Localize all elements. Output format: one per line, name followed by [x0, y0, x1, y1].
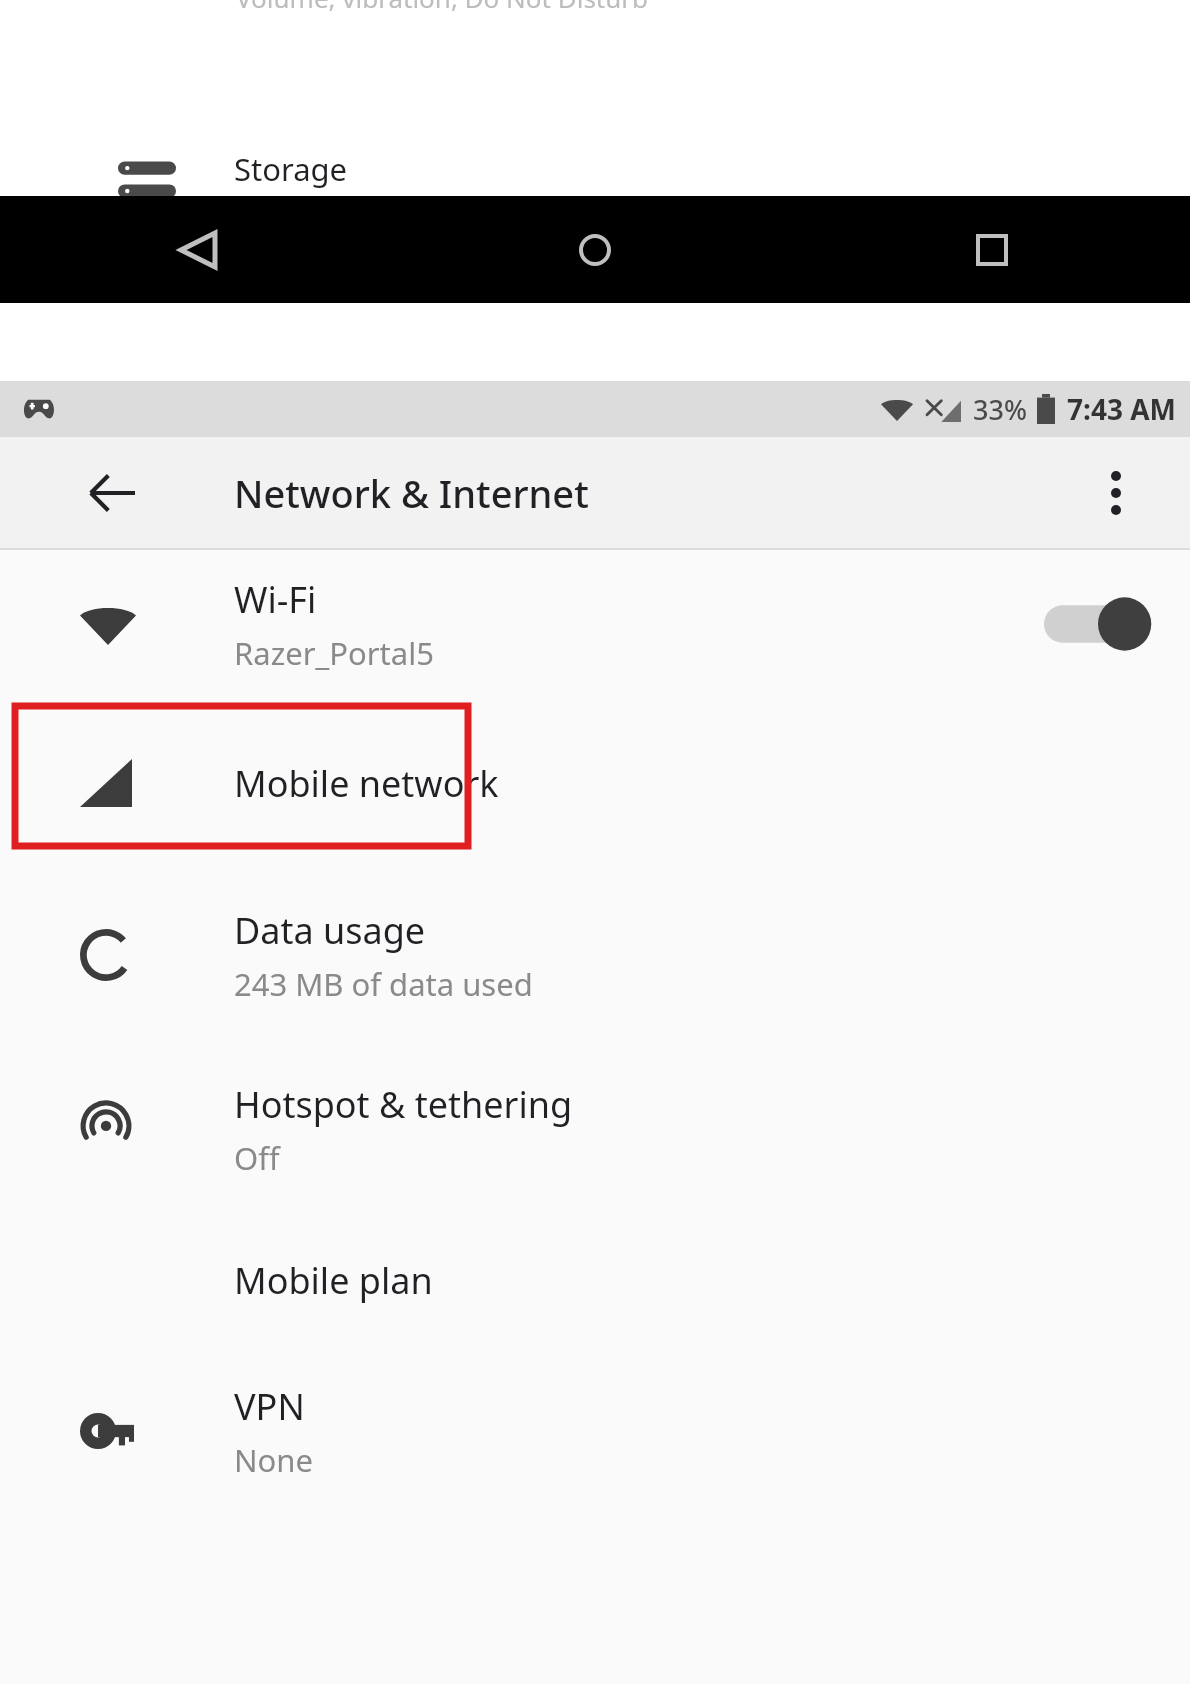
- button[interactable]: Wi-Fi on: [1044, 588, 1156, 660]
- staticText: Data usage: [234, 906, 426, 955]
- staticText: 7:43 AM: [1067, 390, 1176, 428]
- button[interactable]: Navigate up: [70, 451, 154, 535]
- button[interactable]: Hotspot & tethering: [0, 1042, 1190, 1216]
- button[interactable]: Wi-Fi: [0, 550, 1190, 698]
- button[interactable]: More options: [1076, 453, 1156, 533]
- staticText: 33%: [973, 391, 1027, 428]
- staticText: Mobile plan: [234, 1256, 433, 1305]
- button[interactable]: Mobile network: [0, 698, 1190, 868]
- staticText: Razer_Portal5: [234, 632, 434, 674]
- button[interactable]: VPN: [0, 1344, 1190, 1518]
- button[interactable]: Home: [396, 196, 793, 303]
- staticText: Wi-Fi: [234, 575, 317, 624]
- staticText: Storage: [234, 148, 348, 190]
- staticText: Mobile network: [234, 759, 499, 808]
- staticText: Network & Internet: [234, 467, 589, 519]
- staticText: None: [234, 1439, 313, 1481]
- button[interactable]: Data usage: [0, 868, 1190, 1042]
- staticText: 243 MB of data used: [234, 963, 533, 1005]
- staticText: Off: [234, 1137, 280, 1179]
- button[interactable]: Mobile plan: [0, 1216, 1190, 1344]
- button[interactable]: Recent apps: [793, 196, 1190, 303]
- staticText: VPN: [234, 1382, 305, 1431]
- staticText: Hotspot & tethering: [234, 1080, 573, 1129]
- staticText: Volume, vibration, Do Not Disturb: [236, 0, 649, 15]
- button[interactable]: Back: [0, 196, 396, 303]
